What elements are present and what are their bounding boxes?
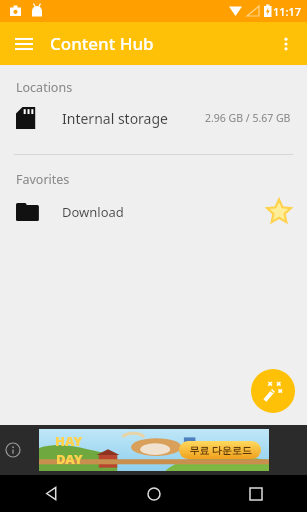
- staticText: 11:17: [273, 4, 302, 19]
- button[interactable]: Open navigation drawer: [8, 28, 40, 60]
- button[interactable]: Magic actions: [251, 369, 295, 413]
- staticText: DAY: [56, 450, 83, 468]
- button[interactable]: Remove from favorites: [261, 194, 297, 230]
- staticText: Favorites: [16, 171, 70, 188]
- button[interactable]: Recent apps: [205, 475, 307, 512]
- staticText: 무료 다운로드: [189, 443, 252, 457]
- button[interactable]: Internal storage: [0, 96, 307, 140]
- staticText: HAY: [55, 432, 83, 450]
- button[interactable]: 무료 다운로드: [179, 441, 261, 459]
- button[interactable]: Back: [0, 475, 103, 512]
- button[interactable]: More options: [269, 27, 303, 61]
- staticText: Locations: [16, 79, 73, 96]
- staticText: Content Hub: [50, 32, 154, 55]
- button[interactable]: Home: [103, 475, 205, 512]
- staticText: Download: [62, 203, 124, 221]
- staticText: 2.96 GB / 5.67 GB: [205, 111, 291, 125]
- staticText: Internal storage: [62, 109, 168, 128]
- button[interactable]: Download: [0, 188, 307, 236]
